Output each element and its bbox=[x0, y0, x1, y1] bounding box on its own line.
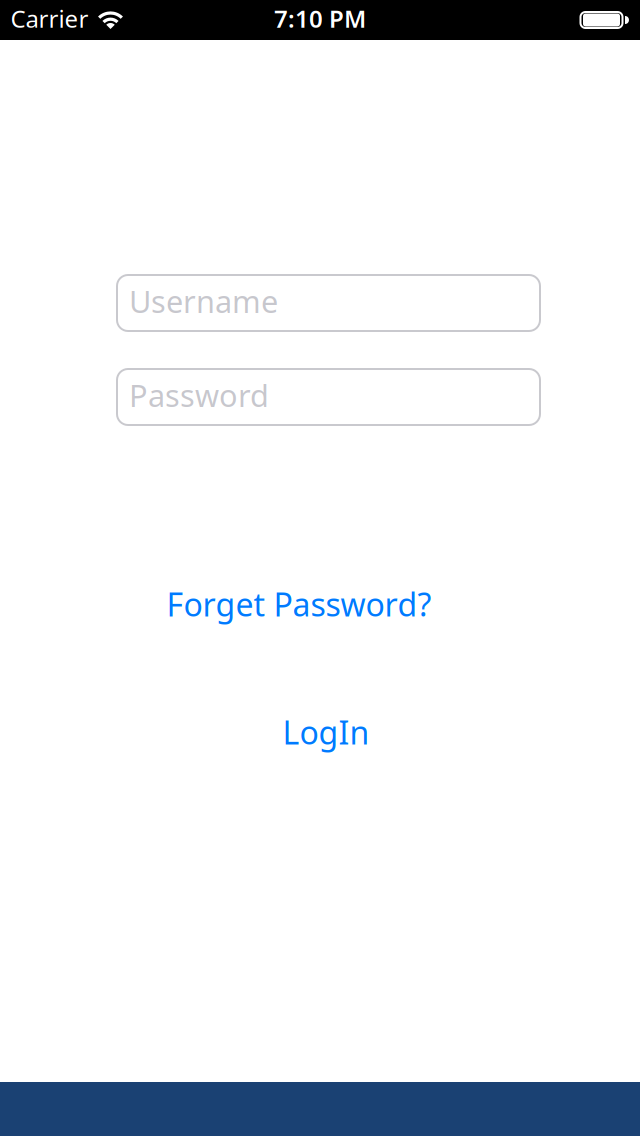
button[interactable]: Forget Password? bbox=[166, 583, 431, 625]
staticText: Username bbox=[129, 281, 278, 321]
button[interactable]: Username bbox=[116, 274, 541, 332]
staticText: Forget Password? bbox=[166, 583, 431, 625]
staticText: 7:10 PM bbox=[274, 3, 366, 34]
staticText: Carrier bbox=[10, 3, 88, 34]
button[interactable]: LogIn bbox=[282, 711, 369, 753]
staticText: LogIn bbox=[282, 711, 369, 753]
staticText: Password bbox=[129, 375, 269, 415]
button[interactable]: Password bbox=[116, 368, 541, 426]
